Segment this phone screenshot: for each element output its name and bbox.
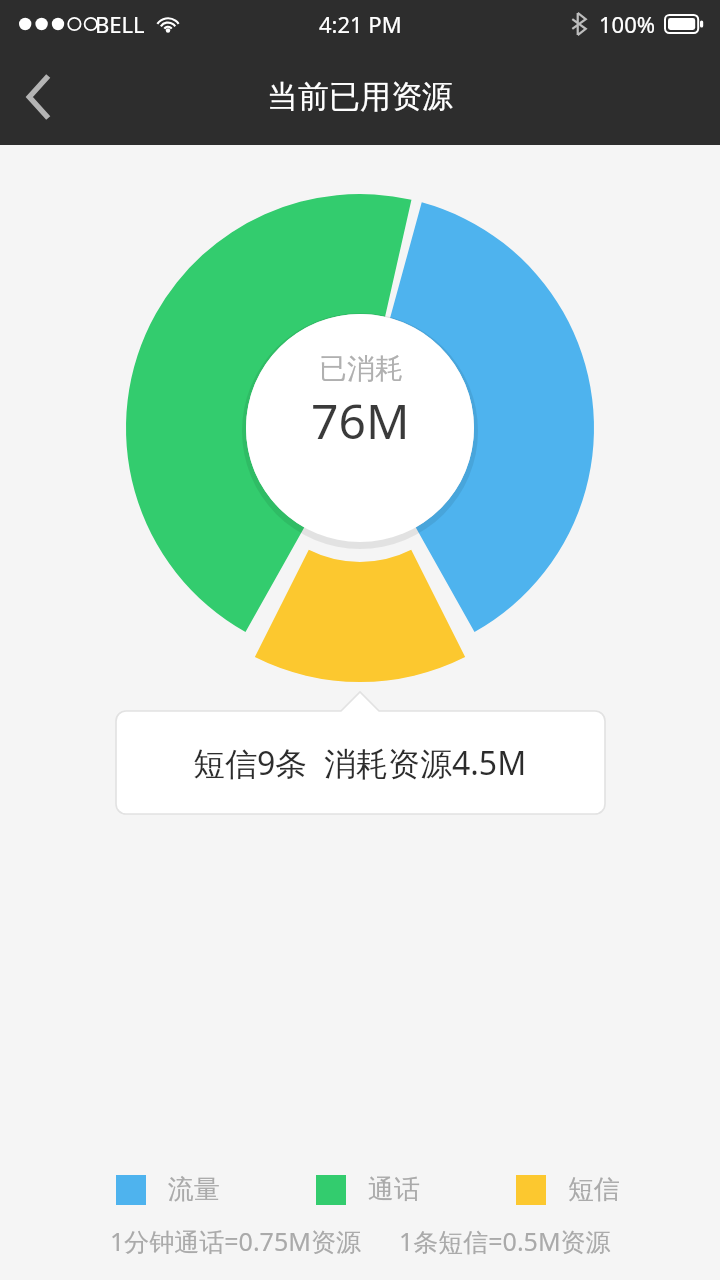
button[interactable]: Back: [0, 58, 78, 136]
button[interactable]: 流量: [116, 1173, 220, 1206]
staticText: 4:21 PM: [319, 9, 402, 39]
staticText: 流量: [168, 1173, 220, 1206]
staticText: 1分钟通话=0.75M资源: [110, 1224, 361, 1258]
staticText: 1条短信=0.5M资源: [399, 1224, 611, 1258]
button[interactable]: 通话: [316, 1173, 420, 1206]
staticText: BELL: [95, 9, 145, 39]
button[interactable]: 短信: [516, 1173, 620, 1206]
staticText: 短信9条 消耗资源4.5M: [193, 741, 527, 785]
staticText: 76M: [311, 388, 410, 453]
staticText: 短信: [568, 1173, 620, 1206]
staticText: 当前已用资源: [267, 77, 453, 116]
staticText: 100%: [599, 9, 656, 39]
staticText: 已消耗: [319, 351, 403, 386]
staticText: 通话: [368, 1173, 420, 1206]
